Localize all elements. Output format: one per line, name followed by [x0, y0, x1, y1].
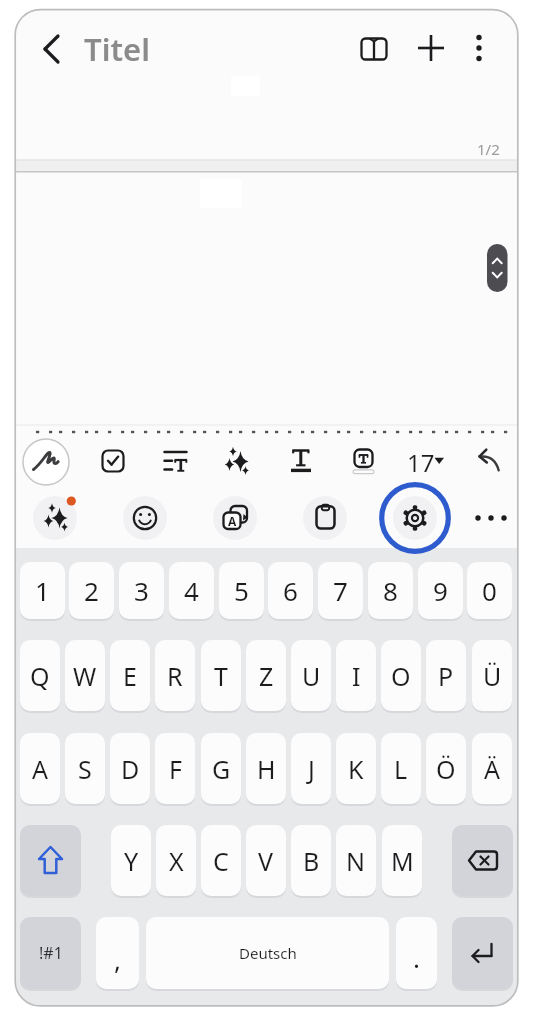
- button[interactable]: Ö: [426, 733, 466, 804]
- button[interactable]: [393, 496, 437, 540]
- staticText: A: [32, 752, 48, 786]
- button[interactable]: [44, 33, 60, 63]
- button[interactable]: Ä: [472, 733, 512, 804]
- staticText: Ä: [484, 752, 500, 786]
- button[interactable]: 6: [268, 562, 313, 619]
- button[interactable]: [416, 33, 446, 63]
- staticText: 17: [407, 446, 435, 479]
- button[interactable]: [303, 496, 347, 540]
- staticText: 3: [134, 573, 149, 608]
- button[interactable]: [213, 496, 257, 540]
- staticText: K: [348, 752, 364, 786]
- staticText: I: [352, 659, 361, 693]
- button[interactable]: G: [201, 733, 241, 804]
- staticText: N: [346, 844, 366, 878]
- button[interactable]: B: [291, 825, 331, 896]
- staticText: V: [258, 844, 274, 878]
- staticText: 7: [333, 573, 348, 608]
- button[interactable]: [285, 445, 317, 477]
- button[interactable]: I: [336, 640, 376, 711]
- staticText: H: [257, 752, 276, 786]
- button[interactable]: F: [155, 733, 195, 804]
- button[interactable]: 4: [169, 562, 214, 619]
- button[interactable]: P: [426, 640, 466, 711]
- button[interactable]: Ü: [472, 640, 512, 711]
- button[interactable]: [473, 445, 505, 477]
- staticText: E: [123, 659, 137, 693]
- button[interactable]: 9: [418, 562, 463, 619]
- button[interactable]: Z: [246, 640, 286, 711]
- button[interactable]: [222, 445, 254, 477]
- button[interactable]: !#1: [20, 917, 81, 989]
- button[interactable]: W: [65, 640, 105, 711]
- staticText: Q: [30, 659, 50, 693]
- staticText: T: [214, 659, 228, 693]
- button[interactable]: [347, 445, 379, 477]
- button[interactable]: [452, 825, 513, 896]
- staticText: Titel: [84, 28, 150, 70]
- button[interactable]: [360, 35, 390, 63]
- button[interactable]: 2: [69, 562, 114, 619]
- button[interactable]: 5: [219, 562, 264, 619]
- button[interactable]: E: [110, 640, 150, 711]
- button[interactable]: 8: [368, 562, 413, 619]
- button[interactable]: Q: [20, 640, 60, 711]
- button[interactable]: [97, 445, 129, 477]
- staticText: 1/2: [477, 139, 500, 159]
- staticText: J: [308, 752, 315, 786]
- button[interactable]: Y: [111, 825, 151, 896]
- button[interactable]: [123, 496, 167, 540]
- staticText: P: [438, 659, 454, 693]
- button[interactable]: [20, 825, 81, 896]
- button[interactable]: [452, 917, 513, 989]
- staticText: O: [391, 659, 411, 693]
- button[interactable]: Deutsch: [146, 917, 389, 989]
- staticText: W: [73, 659, 97, 693]
- button[interactable]: [469, 496, 513, 540]
- button[interactable]: [33, 496, 77, 540]
- staticText: F: [169, 752, 182, 786]
- button[interactable]: [159, 445, 191, 477]
- staticText: Y: [124, 844, 139, 878]
- button[interactable]: 7: [318, 562, 363, 619]
- button[interactable]: L: [381, 733, 421, 804]
- button[interactable]: [23, 439, 69, 485]
- button[interactable]: U: [291, 640, 331, 711]
- button[interactable]: R: [155, 640, 195, 711]
- button[interactable]: C: [201, 825, 241, 896]
- staticText: U: [302, 659, 321, 693]
- button[interactable]: ,: [96, 917, 139, 989]
- button[interactable]: 1: [20, 562, 65, 619]
- button[interactable]: 0: [467, 562, 512, 619]
- button[interactable]: T: [201, 640, 241, 711]
- staticText: 1: [35, 573, 50, 608]
- button[interactable]: H: [246, 733, 286, 804]
- button[interactable]: J: [291, 733, 331, 804]
- button[interactable]: S: [65, 733, 105, 804]
- staticText: 8: [383, 573, 398, 608]
- button[interactable]: A: [20, 733, 60, 804]
- button[interactable]: .: [396, 917, 437, 989]
- button[interactable]: [487, 244, 508, 292]
- button[interactable]: V: [246, 825, 286, 896]
- staticText: B: [303, 844, 320, 878]
- button[interactable]: [405, 445, 447, 477]
- staticText: 9: [433, 573, 448, 608]
- staticText: Deutsch: [239, 943, 297, 963]
- button[interactable]: N: [336, 825, 376, 896]
- button[interactable]: K: [336, 733, 376, 804]
- button[interactable]: 3: [119, 562, 164, 619]
- button[interactable]: D: [110, 733, 150, 804]
- staticText: .: [413, 940, 420, 975]
- staticText: S: [78, 752, 92, 786]
- button[interactable]: X: [156, 825, 196, 896]
- staticText: A: [228, 513, 237, 529]
- button[interactable]: O: [381, 640, 421, 711]
- button[interactable]: M: [382, 825, 422, 896]
- staticText: D: [121, 752, 140, 786]
- staticText: Ö: [436, 752, 456, 786]
- button[interactable]: [466, 33, 492, 63]
- staticText: !#1: [39, 942, 63, 964]
- staticText: C: [213, 844, 229, 878]
- staticText: 5: [234, 573, 249, 608]
